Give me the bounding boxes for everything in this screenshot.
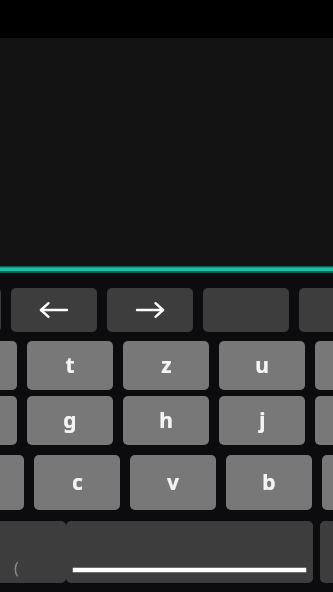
- button[interactable]: j: [219, 396, 305, 445]
- button[interactable]: g: [27, 396, 113, 445]
- button[interactable]: b: [226, 455, 312, 510]
- button[interactable]: r: [0, 341, 17, 390]
- staticText: c: [72, 468, 83, 497]
- button[interactable]: u: [219, 341, 305, 390]
- staticText: g: [63, 406, 77, 435]
- button[interactable]: i: [315, 341, 333, 390]
- button[interactable]: t: [27, 341, 113, 390]
- button[interactable]: Undo: [0, 288, 1, 332]
- staticText: b: [262, 468, 276, 497]
- button[interactable]: More: [299, 288, 333, 332]
- staticText: u: [255, 351, 269, 380]
- staticText: j: [259, 406, 266, 435]
- staticText: t: [65, 351, 75, 380]
- staticText: (: [14, 557, 19, 579]
- button[interactable]: f: [0, 396, 17, 445]
- button[interactable]: Enter: [320, 521, 333, 583]
- button[interactable]: x: [0, 455, 24, 510]
- button[interactable]: z: [123, 341, 209, 390]
- button[interactable]: c: [34, 455, 120, 510]
- button[interactable]: Select all: [203, 288, 289, 332]
- button[interactable]: Forward: [107, 288, 193, 332]
- button[interactable]: k: [315, 396, 333, 445]
- button[interactable]: n: [322, 455, 333, 510]
- button[interactable]: Back: [11, 288, 97, 332]
- staticText: h: [159, 406, 173, 435]
- button[interactable]: Comma: [0, 521, 66, 583]
- staticText: z: [161, 351, 172, 380]
- staticText: v: [167, 468, 179, 497]
- button[interactable]: Space: [66, 521, 313, 583]
- button[interactable]: h: [123, 396, 209, 445]
- button[interactable]: v: [130, 455, 216, 510]
